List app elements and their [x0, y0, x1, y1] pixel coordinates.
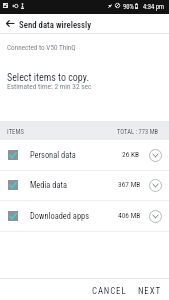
staticText: Send data wirelessly: [19, 20, 92, 30]
staticText: TOTAL : 773 MB: [117, 128, 159, 136]
staticText: Downloaded apps: [30, 211, 89, 221]
button[interactable]: Downloaded apps: [0, 201, 169, 232]
staticText: 26 KB: [122, 150, 140, 159]
button[interactable]: Expand Personal data: [149, 149, 162, 162]
button[interactable]: CANCEL: [89, 282, 129, 299]
staticText: 406 MB: [118, 211, 141, 220]
staticText: Personal data: [30, 150, 76, 160]
staticText: Select items to copy.: [7, 72, 90, 84]
staticText: 90%: [123, 3, 134, 11]
staticText: ITEMS: [7, 128, 24, 136]
button[interactable]: Media data: [0, 170, 169, 201]
staticText: NEXT: [138, 286, 161, 296]
staticText: Estimated time: 2 min 32 sec: [7, 82, 92, 91]
staticText: 367 MB: [118, 180, 141, 189]
button[interactable]: Personal data: [0, 140, 169, 171]
staticText: Connected to V50 ThinQ: [7, 43, 76, 51]
button[interactable]: Navigate up: [0, 14, 20, 33]
button[interactable]: NEXT: [134, 282, 164, 299]
staticText: 4:34 pm: [143, 3, 165, 11]
button[interactable]: Expand Media data: [149, 179, 162, 192]
button[interactable]: Expand Downloaded apps: [149, 210, 162, 223]
staticText: CANCEL: [92, 286, 127, 296]
staticText: Media data: [30, 180, 67, 190]
